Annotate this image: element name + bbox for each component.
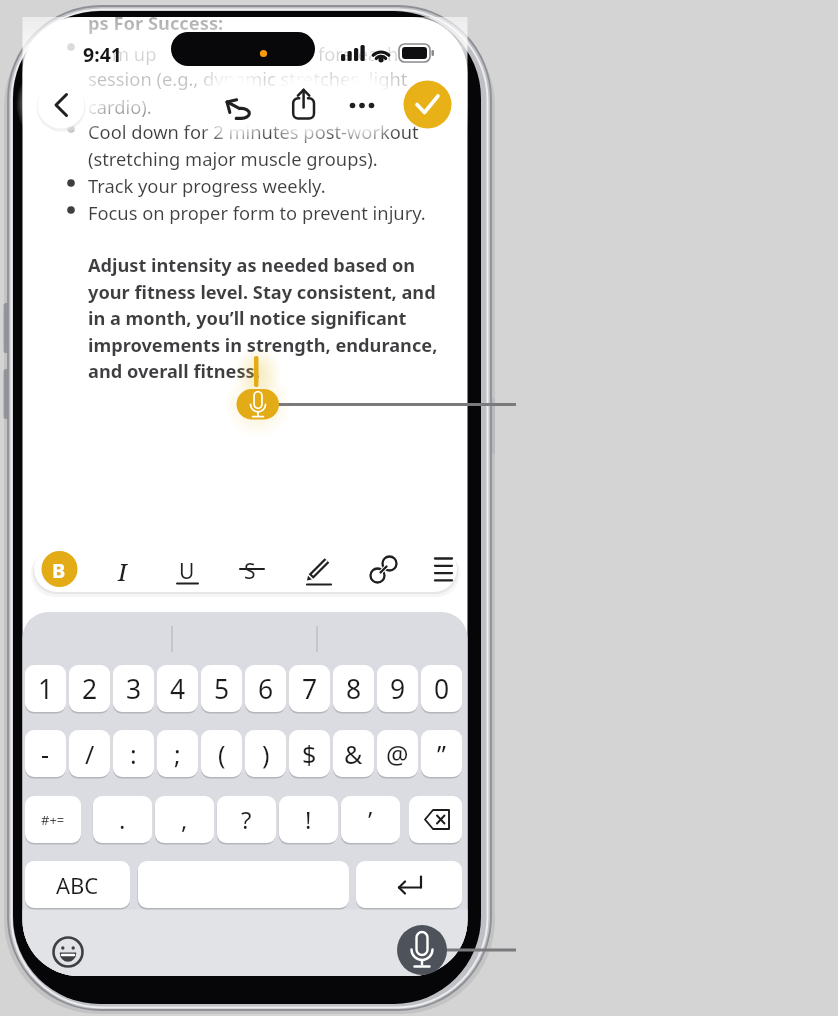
staticText: B (52, 557, 66, 584)
button[interactable]: 3 (113, 665, 154, 712)
staticText: cardio). (88, 94, 152, 119)
button[interactable]: 9 (377, 665, 418, 712)
staticText: ” (437, 737, 446, 771)
button[interactable] (425, 551, 457, 583)
staticText: $ (302, 737, 317, 771)
staticText: S (244, 557, 256, 586)
button[interactable]: : (113, 730, 154, 777)
staticText: 8 (346, 671, 362, 707)
staticText: ps For Success: (88, 10, 224, 35)
staticText: , (181, 803, 188, 836)
staticText: U (179, 557, 195, 586)
button[interactable]: , (155, 796, 214, 843)
staticText: 0 (434, 671, 450, 707)
button[interactable]: ; (157, 730, 198, 777)
button[interactable]: $ (289, 730, 330, 777)
button[interactable] (138, 861, 349, 908)
button[interactable]: - (25, 730, 66, 777)
button[interactable] (403, 80, 451, 128)
button[interactable]: ( (201, 730, 242, 777)
staticText: 2 (82, 671, 98, 707)
staticText: fore each (318, 41, 399, 66)
staticText: - (41, 737, 50, 771)
staticText: 5 (214, 671, 230, 707)
button[interactable] (38, 82, 84, 128)
button[interactable]: 4 (157, 665, 198, 712)
button[interactable]: 5 (201, 665, 242, 712)
button[interactable]: ABC (25, 861, 130, 908)
staticText: . (119, 803, 126, 836)
staticText: (stretching major muscle groups). (88, 146, 378, 171)
button[interactable]: 7 (289, 665, 330, 712)
button[interactable]: 0 (421, 665, 462, 712)
button[interactable]: ” (421, 730, 462, 777)
staticText: & (344, 737, 363, 771)
button[interactable]: ) (245, 730, 286, 777)
staticText: improvements in strength, endurance, (88, 333, 438, 358)
staticText: 6 (258, 671, 274, 707)
button[interactable]: ’ (341, 796, 400, 843)
button[interactable] (300, 551, 337, 588)
button[interactable] (279, 82, 325, 128)
staticText: ’ (368, 803, 373, 836)
staticText: / (85, 737, 95, 771)
button[interactable]: / (69, 730, 110, 777)
button[interactable] (105, 551, 142, 588)
button[interactable]: & (333, 730, 374, 777)
staticText: in a month, you’ll notice significant (88, 306, 407, 331)
button[interactable] (364, 551, 401, 588)
staticText: m up (112, 41, 157, 66)
staticText: 4 (170, 671, 186, 707)
button[interactable] (236, 389, 279, 420)
staticText: ! (305, 803, 312, 836)
button[interactable] (397, 925, 447, 975)
staticText: : (130, 737, 137, 771)
button[interactable]: @ (377, 730, 418, 777)
staticText: @ (386, 737, 409, 771)
button[interactable]: ! (279, 796, 338, 843)
staticText: #+= (41, 811, 65, 829)
staticText: Focus on proper form to prevent injury. (88, 200, 426, 225)
staticText: your fitness level. Stay consistent, and (88, 280, 436, 305)
staticText: 9 (390, 671, 406, 707)
button[interactable]: 6 (245, 665, 286, 712)
button[interactable] (213, 82, 259, 128)
button[interactable]: 2 (69, 665, 110, 712)
staticText: Adjust intensity as needed based on (88, 253, 416, 278)
button[interactable] (409, 796, 462, 843)
button[interactable]: 8 (333, 665, 374, 712)
button[interactable] (53, 936, 85, 968)
staticText: Track your progress weekly. (88, 173, 326, 198)
staticText: ? (241, 803, 252, 836)
button[interactable] (41, 551, 78, 588)
button[interactable] (339, 82, 385, 128)
button[interactable] (356, 861, 462, 908)
staticText: I (118, 556, 127, 587)
staticText: 9:41 (83, 41, 122, 68)
staticText: session (e.g., dynamic stretches, light (88, 66, 408, 91)
button[interactable]: #+= (25, 796, 81, 843)
staticText: ( (218, 737, 226, 771)
button[interactable]: 1 (25, 665, 66, 712)
staticText: Cool down for 2 minutes post-workout (88, 119, 419, 144)
button[interactable]: . (93, 796, 152, 843)
button[interactable] (233, 551, 270, 588)
button[interactable]: ? (217, 796, 276, 843)
staticText: ; (174, 737, 181, 771)
staticText: ABC (56, 870, 99, 900)
staticText: 1 (38, 671, 54, 707)
staticText: 7 (302, 671, 318, 707)
staticText: and overall fitness. (88, 359, 260, 384)
staticText: 3 (126, 671, 142, 707)
button[interactable] (169, 551, 206, 588)
staticText: ) (262, 737, 270, 771)
